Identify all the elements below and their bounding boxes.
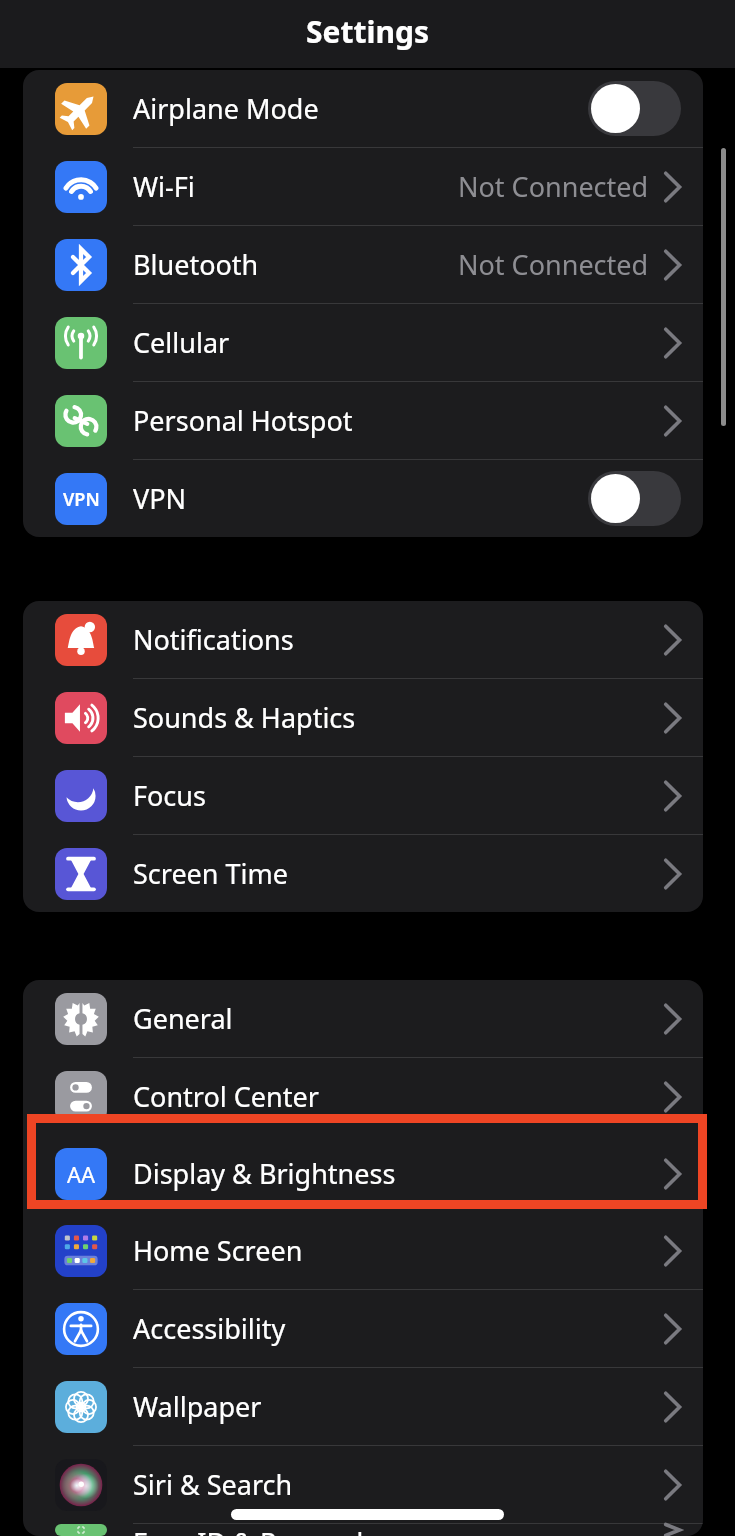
staticText: Wi-Fi — [133, 168, 195, 205]
button[interactable]: Accessibility — [23, 1290, 703, 1368]
staticText: Notifications — [133, 621, 294, 658]
staticText: Focus — [133, 777, 206, 814]
staticText: Siri & Search — [133, 1466, 293, 1503]
button[interactable]: Cellular — [23, 304, 703, 382]
staticText: AA — [67, 1159, 96, 1189]
staticText: Bluetooth — [133, 246, 259, 283]
button[interactable]: AA — [23, 1135, 703, 1212]
button[interactable]: Airplane Mode — [23, 70, 703, 148]
button[interactable]: Home Screen — [23, 1212, 703, 1290]
staticText: Cellular — [133, 324, 230, 361]
button[interactable]: Siri & Search — [23, 1446, 703, 1524]
button[interactable]: Control Center — [23, 1058, 703, 1135]
button[interactable]: Personal Hotspot — [23, 382, 703, 460]
button[interactable]: Sounds & Haptics — [23, 679, 703, 757]
staticText: Accessibility — [133, 1310, 286, 1347]
button[interactable]: General — [23, 980, 703, 1058]
staticText: Sounds & Haptics — [133, 699, 356, 736]
staticText: Screen Time — [133, 855, 289, 892]
staticText: Face ID & Passcode — [133, 1524, 379, 1536]
button[interactable]: Face ID & Passcode — [23, 1524, 703, 1536]
button[interactable]: Wi-Fi — [23, 148, 703, 226]
staticText: Control Center — [133, 1078, 319, 1115]
button[interactable]: VPN — [23, 460, 703, 537]
button[interactable]: Wallpaper — [23, 1368, 703, 1446]
staticText: Settings — [306, 11, 429, 52]
staticText: Not Connected — [458, 168, 649, 205]
button[interactable]: Notifications — [23, 601, 703, 679]
button[interactable]: Bluetooth — [23, 226, 703, 304]
staticText: Airplane Mode — [133, 90, 319, 127]
staticText: General — [133, 1000, 233, 1037]
button[interactable]: Airplane Mode toggle — [588, 81, 681, 136]
button[interactable]: Focus — [23, 757, 703, 835]
button[interactable]: Screen Time — [23, 835, 703, 912]
staticText: VPN — [133, 480, 187, 517]
staticText: Personal Hotspot — [133, 402, 353, 439]
staticText: Not Connected — [458, 246, 649, 283]
button[interactable]: VPN toggle — [588, 471, 681, 526]
staticText: Display & Brightness — [133, 1155, 396, 1192]
staticText: VPN — [63, 487, 100, 512]
staticText: Home Screen — [133, 1232, 303, 1269]
staticText: Wallpaper — [133, 1388, 262, 1425]
